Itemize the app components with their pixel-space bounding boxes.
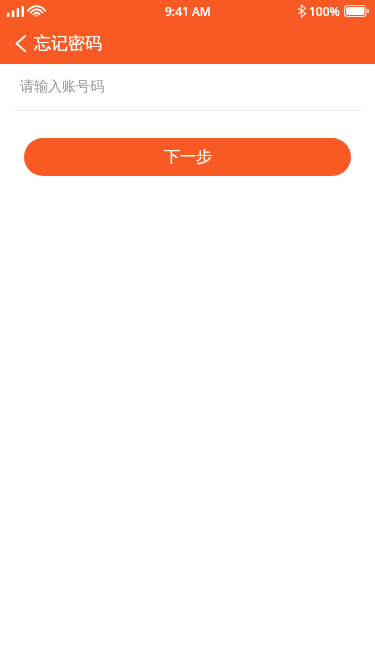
staticText: 请输入账号码: [20, 78, 104, 96]
staticText: 忘记密码: [34, 33, 102, 54]
button[interactable]: 下一步: [24, 138, 351, 176]
staticText: 100%: [309, 3, 340, 19]
button[interactable]: Back: [0, 22, 40, 64]
staticText: 下一步: [164, 147, 212, 167]
staticText: 9:41 AM: [165, 3, 211, 19]
